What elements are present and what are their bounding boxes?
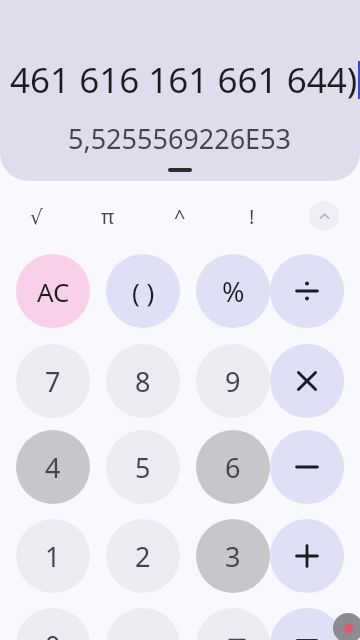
button[interactable]: π [72,194,144,238]
button[interactable]: ( ) [106,254,180,328]
staticText: AC [37,274,70,309]
button[interactable]: √ [0,194,72,238]
button[interactable]: 0 [16,608,90,640]
staticText: 7 [45,363,61,400]
staticText: 6 [225,449,241,486]
button[interactable]: Backspace [196,608,270,640]
button[interactable]: . [106,608,180,640]
button[interactable]: ! [216,194,288,238]
staticText: 1 [45,538,61,575]
button[interactable]: Divide [270,254,344,328]
button[interactable]: Plus [270,519,344,593]
button[interactable]: ^ [144,194,216,238]
staticText: 2 [135,538,151,575]
staticText: √ [30,205,43,228]
button[interactable]: Equals [270,608,344,640]
staticText: ! [249,203,255,230]
staticText: 3 [225,538,241,575]
staticText: π [101,203,115,230]
staticText: 9 [225,363,241,400]
staticText: 5,5255569226E53 [68,120,292,157]
button[interactable]: 3 [196,519,270,593]
button[interactable]: 4 [16,430,90,504]
button[interactable]: Multiply [270,344,344,418]
staticText: 4 [45,449,61,486]
button[interactable]: Expand functions [309,201,339,231]
staticText: 0 [45,627,61,640]
button[interactable]: 1 [16,519,90,593]
button[interactable]: 2 [106,519,180,593]
button[interactable]: 461 616 161 661 644) [0,0,360,181]
button[interactable]: 9 [196,344,270,418]
staticText: ^ [174,203,186,230]
staticText: 461 616 161 661 644) [10,56,358,104]
staticText: % [222,273,245,310]
button[interactable]: Minus [270,430,344,504]
button[interactable]: 7 [16,344,90,418]
button[interactable]: 5 [106,430,180,504]
button[interactable]: % [196,254,270,328]
button[interactable]: 8 [106,344,180,418]
staticText: 5 [135,449,151,486]
button[interactable]: 6 [196,430,270,504]
button[interactable]: AC [16,254,90,328]
staticText: 8 [135,363,151,400]
staticText: ( ) [132,274,155,309]
